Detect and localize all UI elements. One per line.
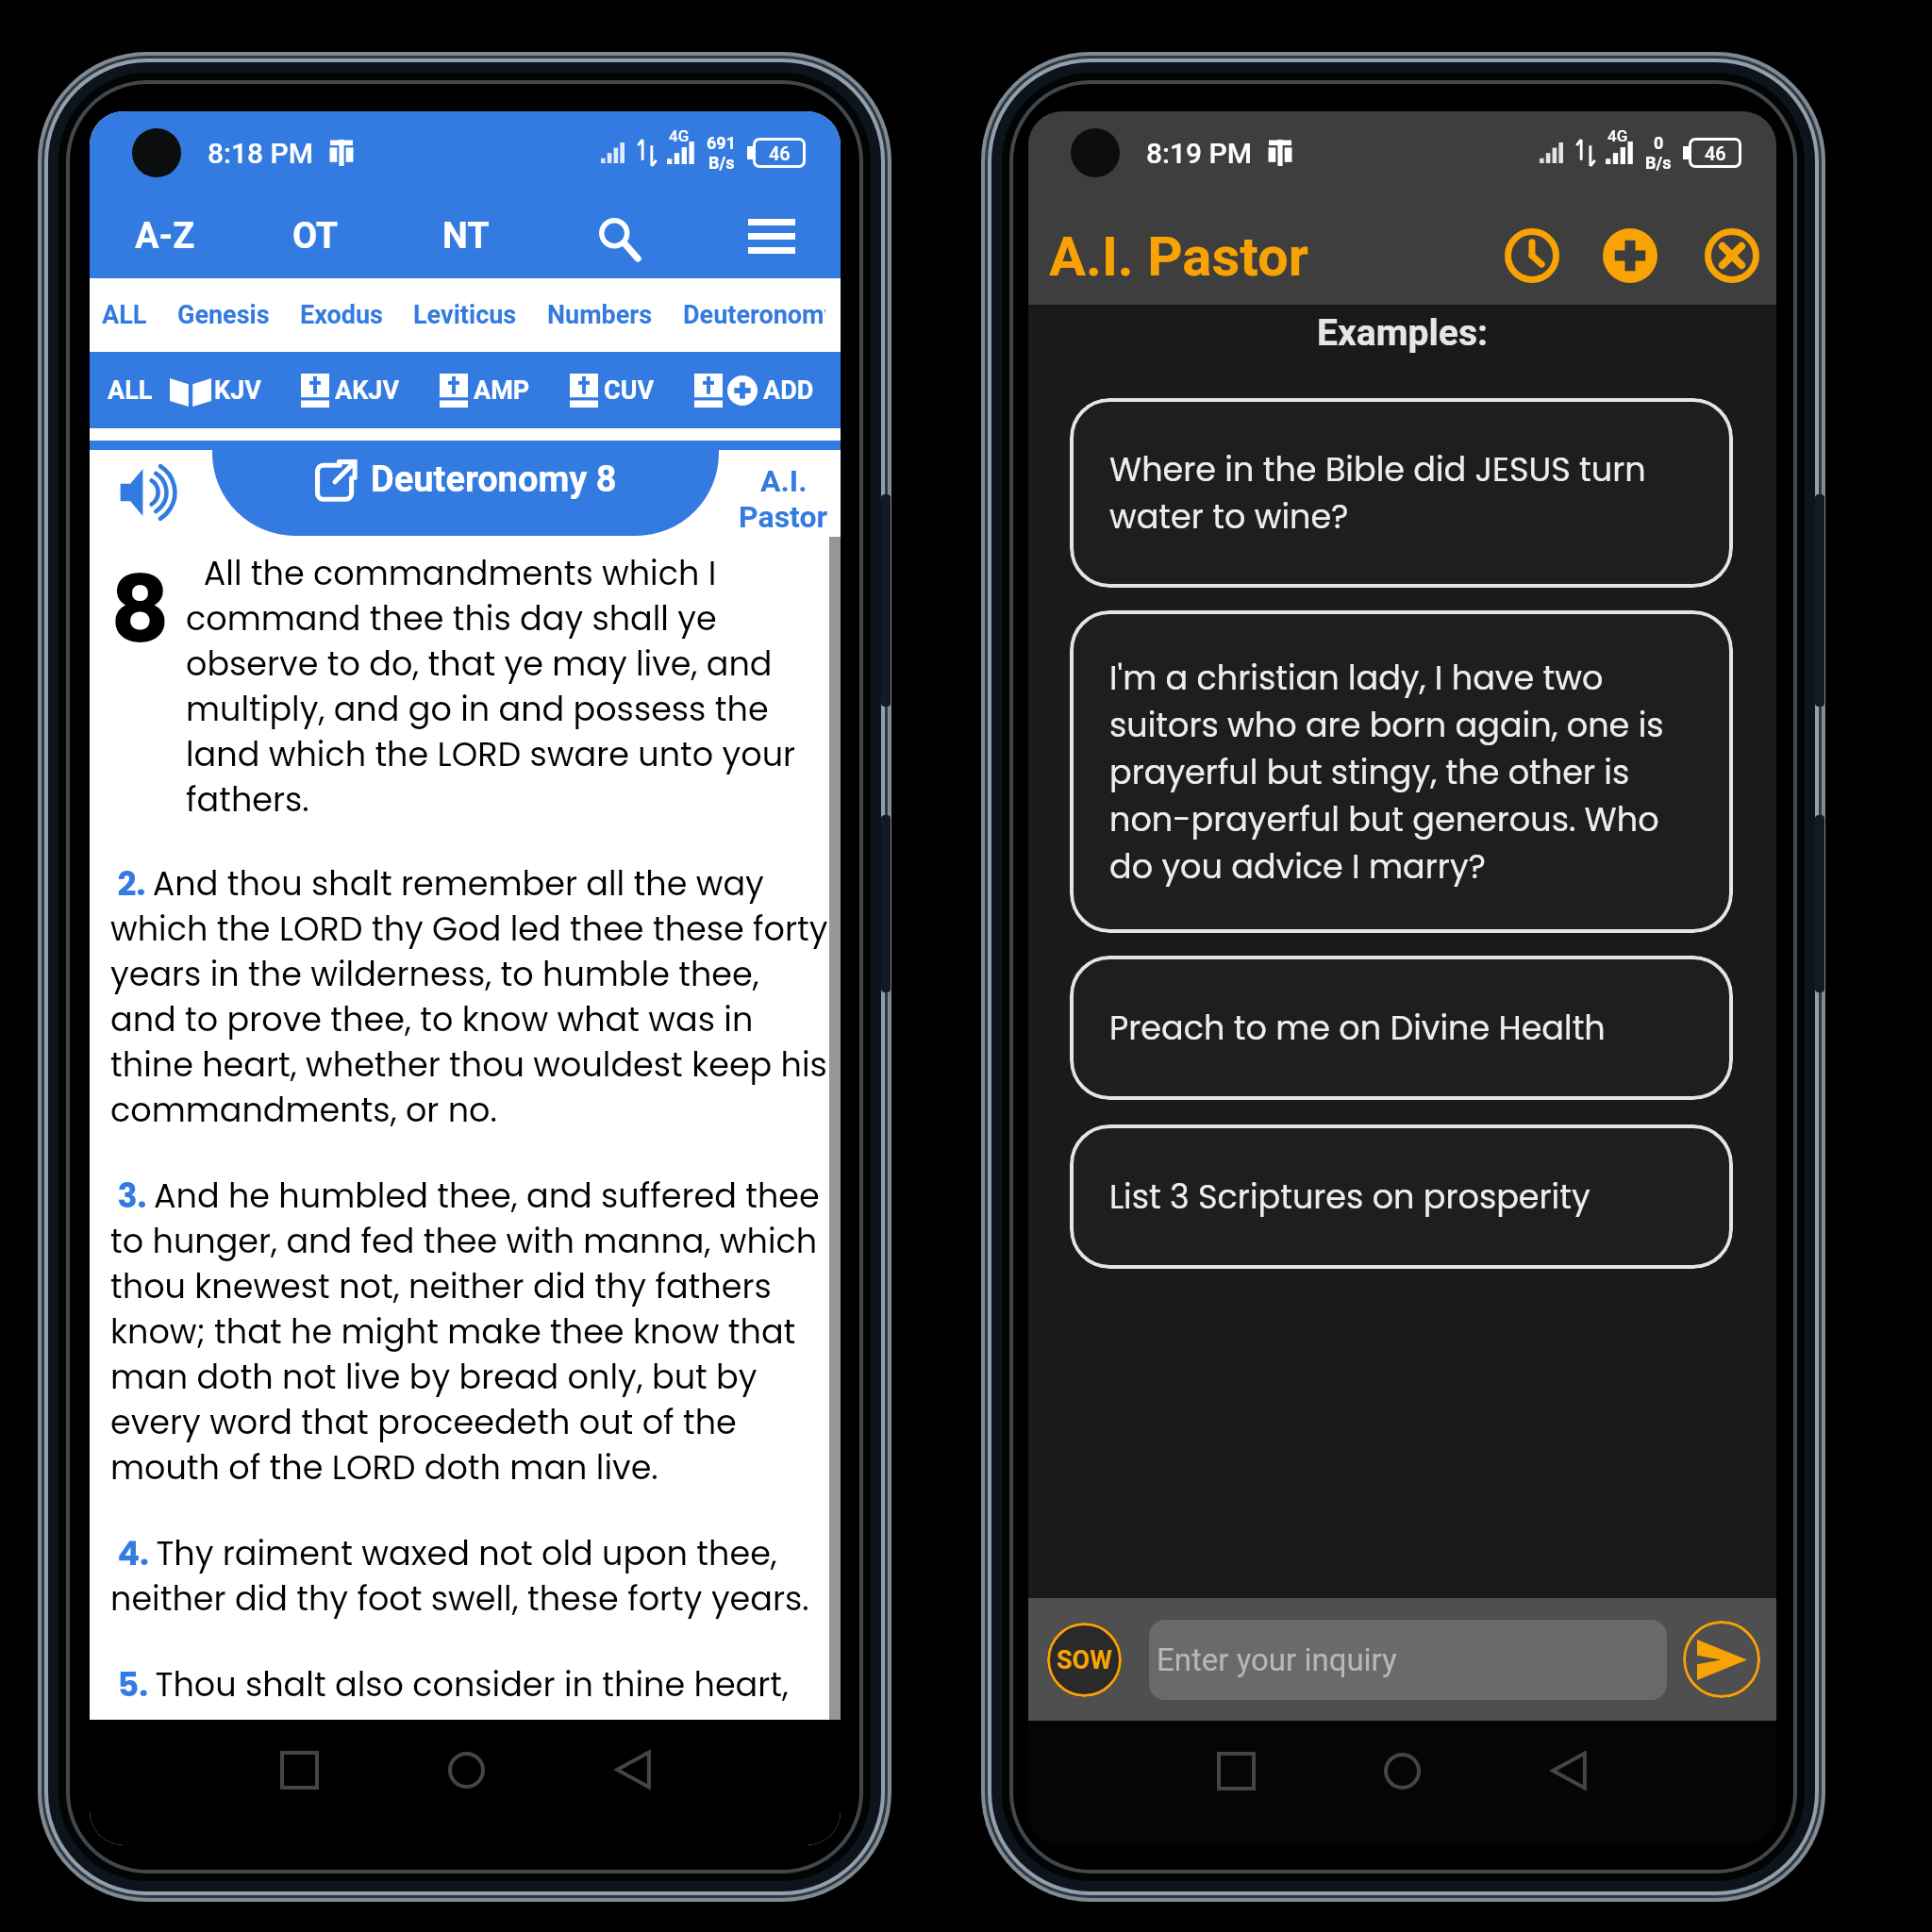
staticText: Enter your inquiry — [1157, 1641, 1397, 1678]
staticText: 46 — [769, 142, 791, 164]
staticText: 5. Thou shalt also consider in thine hea… — [110, 1661, 831, 1707]
staticText: KJV — [214, 375, 261, 406]
staticText: 8 — [110, 545, 170, 674]
staticText: 0 — [1654, 133, 1664, 153]
staticText: Exodus — [300, 300, 383, 330]
staticText: A.I. Pastor — [1049, 225, 1308, 289]
button[interactable]: Back — [549, 1720, 715, 1820]
staticText: ALL — [108, 375, 153, 406]
staticText: 46 — [1705, 142, 1726, 164]
button[interactable]: I'm a christian lady, I have two suitors… — [1070, 610, 1733, 933]
button[interactable]: Deuteronomy 8 — [212, 441, 719, 536]
staticText: Deuteronomy 8 — [371, 458, 617, 501]
button[interactable]: SOW — [1047, 1623, 1122, 1697]
button[interactable]: Recents — [1154, 1721, 1319, 1821]
button[interactable]: Recents — [216, 1720, 383, 1820]
button[interactable]: Search — [541, 194, 691, 278]
button[interactable]: Numbers — [532, 278, 668, 352]
button[interactable]: Home — [1319, 1721, 1485, 1821]
button[interactable]: Where in the Bible did JESUS turn water … — [1070, 398, 1733, 588]
staticText: OT — [292, 215, 339, 258]
staticText: 4G — [1607, 126, 1628, 145]
staticText: Pastor — [739, 499, 828, 535]
button[interactable]: New chat — [1599, 225, 1661, 287]
staticText: 4G — [669, 126, 690, 145]
staticText: Preach to me on Divine Health — [1109, 1005, 1606, 1051]
button[interactable]: Send — [1683, 1621, 1760, 1698]
staticText: B/s — [708, 153, 735, 173]
button[interactable]: A-Z — [90, 194, 241, 278]
button[interactable]: Genesis — [162, 278, 285, 352]
button[interactable]: Preach to me on Divine Health — [1070, 956, 1733, 1100]
button[interactable]: Home — [383, 1720, 549, 1820]
button[interactable]: Enter your inquiry — [1149, 1620, 1667, 1700]
button[interactable]: A.I. — [739, 463, 828, 535]
button[interactable]: History — [1501, 225, 1563, 287]
button[interactable]: AMP — [440, 352, 530, 428]
staticText: Examples: — [1028, 311, 1776, 355]
staticText: I'm a christian lady, I have two suitors… — [1109, 655, 1710, 890]
button[interactable]: Read aloud — [118, 461, 180, 524]
button[interactable]: Back — [1485, 1721, 1651, 1821]
button[interactable]: KJV — [170, 352, 261, 428]
staticText: AKJV — [335, 375, 400, 406]
staticText: B/s — [1645, 153, 1672, 173]
staticText: 8:18 PM — [208, 137, 314, 170]
staticText: ADD — [763, 375, 814, 406]
staticText: Where in the Bible did JESUS turn water … — [1109, 446, 1710, 540]
staticText: 3. And he humbled thee, and suffered the… — [110, 1173, 831, 1491]
staticText: 2. And thou shalt remember all the way w… — [110, 860, 831, 1133]
button[interactable]: List 3 Scriptures on prosperity — [1070, 1124, 1733, 1269]
staticText: A.I. — [760, 463, 808, 499]
staticText: Deuteronomy — [683, 300, 825, 330]
button[interactable]: ALL — [102, 278, 162, 352]
staticText: Numbers — [547, 300, 653, 330]
staticText: 4. Thy raiment waxed not old upon thee, … — [110, 1530, 831, 1622]
staticText: SOW — [1057, 1645, 1112, 1675]
button[interactable]: CUV — [570, 352, 655, 428]
button[interactable]: Exodus — [285, 278, 398, 352]
button[interactable]: NT — [391, 194, 541, 278]
staticText: 8:19 PM — [1146, 137, 1253, 170]
button[interactable]: ALL — [108, 352, 153, 428]
button[interactable]: Close — [1701, 225, 1763, 287]
staticText: Genesis — [177, 300, 270, 330]
staticText: A-Z — [135, 215, 195, 258]
button[interactable]: Leviticus — [398, 278, 532, 352]
button[interactable]: Menu — [691, 194, 841, 278]
staticText: 691 — [707, 133, 736, 153]
button[interactable]: Deuteronomy — [668, 278, 841, 352]
staticText: All the commandments which I command the… — [186, 550, 831, 823]
button[interactable]: OT — [241, 194, 391, 278]
staticText: NT — [442, 215, 490, 258]
staticText: ALL — [102, 300, 147, 330]
button[interactable]: AKJV — [301, 352, 400, 428]
staticText: AMP — [474, 375, 530, 406]
staticText: CUV — [604, 375, 655, 406]
button[interactable]: ADD — [694, 352, 814, 428]
staticText: Leviticus — [413, 300, 517, 330]
staticText: List 3 Scriptures on prosperity — [1109, 1174, 1591, 1220]
